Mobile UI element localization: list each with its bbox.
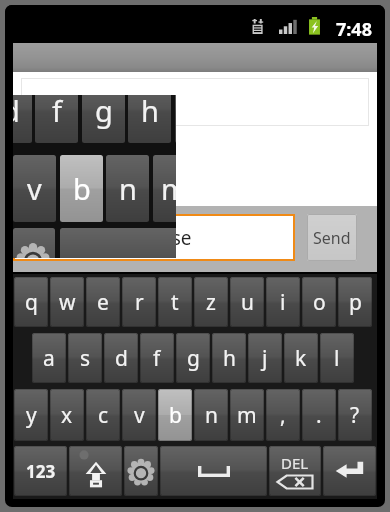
staticText: h xyxy=(141,95,159,130)
button[interactable]: Send xyxy=(307,214,357,261)
staticText: j xyxy=(262,344,268,373)
staticText: y xyxy=(26,401,37,430)
button[interactable]: y xyxy=(14,389,48,441)
button[interactable]: , xyxy=(266,389,300,441)
staticText: g xyxy=(95,95,113,130)
button[interactable]: k xyxy=(284,333,318,383)
button[interactable]: e xyxy=(86,277,120,327)
button[interactable]: h xyxy=(212,333,246,383)
staticText: v xyxy=(134,401,145,430)
button[interactable]: r xyxy=(122,277,156,327)
staticText: n xyxy=(119,169,137,208)
staticText: s xyxy=(80,344,91,373)
button[interactable]: c xyxy=(86,389,120,441)
button[interactable]: Shift xyxy=(69,446,122,496)
button[interactable]: f xyxy=(140,333,174,383)
staticText: 7:48 xyxy=(336,17,372,42)
staticText: u xyxy=(241,288,254,317)
button[interactable]: b xyxy=(158,389,192,441)
button[interactable] xyxy=(21,78,369,126)
staticText: DEL xyxy=(281,453,309,473)
button[interactable]: i xyxy=(266,277,300,327)
staticText: f xyxy=(52,95,62,130)
staticText: v xyxy=(27,169,42,208)
staticText: 123 xyxy=(26,460,56,483)
button[interactable]: u xyxy=(230,277,264,327)
button[interactable]: j xyxy=(248,333,282,383)
button[interactable]: a xyxy=(32,333,66,383)
button[interactable]: l xyxy=(320,333,354,383)
staticText: d xyxy=(115,344,128,373)
staticText: q xyxy=(25,288,38,317)
staticText: c xyxy=(98,401,109,430)
button[interactable]: g xyxy=(176,333,210,383)
staticText: t xyxy=(171,288,179,317)
staticText: e xyxy=(97,288,109,317)
staticText: , xyxy=(280,401,286,430)
button[interactable]: Delete xyxy=(269,446,321,496)
button[interactable]: v xyxy=(122,389,156,441)
staticText: b xyxy=(169,401,182,430)
staticText: f xyxy=(153,344,161,373)
staticText: g xyxy=(187,344,200,373)
button[interactable]: t xyxy=(158,277,192,327)
staticText: i xyxy=(280,288,286,317)
button[interactable]: Space xyxy=(160,446,267,496)
button[interactable]: q xyxy=(14,277,48,327)
button[interactable]: 123 xyxy=(14,446,67,496)
button[interactable]: x xyxy=(50,389,84,441)
staticText: x xyxy=(61,401,73,430)
staticText: b xyxy=(73,169,91,208)
staticText: d xyxy=(13,95,20,130)
button[interactable]: use xyxy=(13,214,295,261)
staticText: r xyxy=(135,288,144,317)
button[interactable]: n xyxy=(194,389,228,441)
staticText: o xyxy=(313,288,326,317)
button[interactable]: w xyxy=(50,277,84,327)
staticText: p xyxy=(349,288,362,317)
staticText: m xyxy=(237,401,257,430)
staticText: . xyxy=(316,401,322,430)
button[interactable]: d xyxy=(104,333,138,383)
staticText: k xyxy=(295,344,307,373)
staticText: Send xyxy=(313,227,351,249)
button[interactable]: Input method settings xyxy=(124,446,158,496)
button[interactable]: p xyxy=(338,277,372,327)
button[interactable]: Enter xyxy=(323,446,376,496)
staticText: m xyxy=(161,169,176,208)
staticText: a xyxy=(43,344,55,373)
staticText: z xyxy=(206,288,216,317)
staticText: w xyxy=(59,288,76,317)
button[interactable]: z xyxy=(194,277,228,327)
staticText: n xyxy=(205,401,218,430)
button[interactable]: . xyxy=(302,389,336,441)
staticText: use xyxy=(160,225,192,251)
button[interactable]: s xyxy=(68,333,102,383)
staticText: l xyxy=(334,344,340,373)
staticText: h xyxy=(223,344,236,373)
button[interactable]: m xyxy=(230,389,264,441)
staticText: ? xyxy=(350,401,360,430)
button[interactable]: ? xyxy=(338,389,372,441)
button[interactable]: o xyxy=(302,277,336,327)
